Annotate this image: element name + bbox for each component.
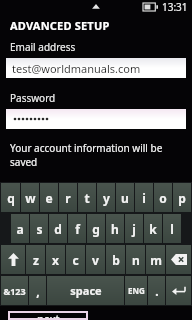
button[interactable]: Shift bbox=[1, 245, 25, 274]
button[interactable]: j bbox=[125, 214, 143, 243]
staticText: k bbox=[149, 221, 157, 237]
staticText: d bbox=[54, 221, 62, 237]
button[interactable]: x bbox=[46, 245, 65, 274]
button[interactable]: a bbox=[11, 214, 29, 243]
button[interactable]: Backspace bbox=[166, 245, 191, 274]
staticText: 13:31 bbox=[162, 0, 188, 14]
staticText: . bbox=[155, 283, 159, 299]
button[interactable]: t bbox=[78, 183, 96, 212]
button[interactable]: v bbox=[86, 245, 105, 274]
button[interactable]: , bbox=[29, 276, 46, 305]
button[interactable]: y bbox=[97, 183, 115, 212]
button[interactable]: h bbox=[106, 214, 124, 243]
staticText: x bbox=[52, 252, 59, 268]
staticText: c bbox=[72, 252, 79, 268]
staticText: w bbox=[25, 190, 36, 206]
staticText: i bbox=[142, 190, 146, 206]
button[interactable]: o bbox=[154, 183, 172, 212]
staticText: space bbox=[70, 283, 102, 298]
staticText: j bbox=[132, 221, 136, 237]
button[interactable]: b bbox=[106, 245, 125, 274]
button[interactable]: z bbox=[26, 245, 45, 274]
button[interactable]: ENG bbox=[125, 276, 147, 305]
staticText: Password bbox=[10, 91, 56, 105]
button[interactable]: k bbox=[144, 214, 162, 243]
button[interactable]: s bbox=[30, 214, 48, 243]
button[interactable]: n bbox=[126, 245, 145, 274]
staticText: h bbox=[111, 221, 119, 237]
staticText: z bbox=[33, 252, 39, 268]
staticText: next bbox=[37, 311, 60, 320]
staticText: q bbox=[7, 190, 15, 206]
staticText: l bbox=[170, 221, 174, 237]
button[interactable]: l bbox=[163, 214, 181, 243]
staticText: s bbox=[36, 221, 43, 237]
button[interactable]: . bbox=[148, 276, 165, 305]
staticText: ADVANCED SETUP bbox=[10, 18, 110, 33]
staticText: g bbox=[92, 221, 100, 237]
staticText: u bbox=[121, 190, 129, 206]
staticText: y bbox=[103, 190, 110, 206]
staticText: m bbox=[150, 252, 162, 268]
button[interactable]: w bbox=[21, 183, 39, 212]
button[interactable]: space bbox=[47, 276, 124, 305]
button[interactable]: test@worldmanuals.com bbox=[6, 58, 186, 78]
staticText: p bbox=[178, 190, 186, 206]
staticText: e bbox=[45, 190, 53, 206]
button[interactable]: d bbox=[49, 214, 67, 243]
button[interactable]: Enter bbox=[166, 276, 191, 305]
button[interactable]: f bbox=[68, 214, 86, 243]
staticText: , bbox=[36, 283, 40, 299]
button[interactable]: &123 bbox=[1, 276, 28, 305]
button[interactable] bbox=[6, 109, 186, 129]
staticText: Your account information will be saved bbox=[10, 141, 192, 169]
staticText: r bbox=[65, 190, 71, 206]
button[interactable]: i bbox=[135, 183, 153, 212]
staticText: test@worldmanuals.com bbox=[12, 61, 141, 76]
button[interactable]: c bbox=[66, 245, 85, 274]
staticText: Email address bbox=[10, 40, 76, 54]
button[interactable]: u bbox=[116, 183, 134, 212]
staticText: n bbox=[132, 252, 140, 268]
staticText: v bbox=[92, 252, 99, 268]
button[interactable]: q bbox=[1, 183, 20, 212]
button[interactable]: g bbox=[87, 214, 105, 243]
button[interactable]: r bbox=[59, 183, 77, 212]
staticText: f bbox=[75, 221, 80, 237]
button[interactable]: m bbox=[146, 245, 165, 274]
staticText: ENG bbox=[128, 285, 145, 296]
staticText: t bbox=[84, 190, 90, 206]
staticText: &123 bbox=[3, 285, 26, 297]
button[interactable]: p bbox=[173, 183, 191, 212]
staticText: b bbox=[112, 252, 120, 268]
button[interactable]: e bbox=[40, 183, 58, 212]
staticText: a bbox=[16, 221, 24, 237]
staticText: o bbox=[159, 190, 167, 206]
button[interactable]: next bbox=[8, 311, 88, 320]
